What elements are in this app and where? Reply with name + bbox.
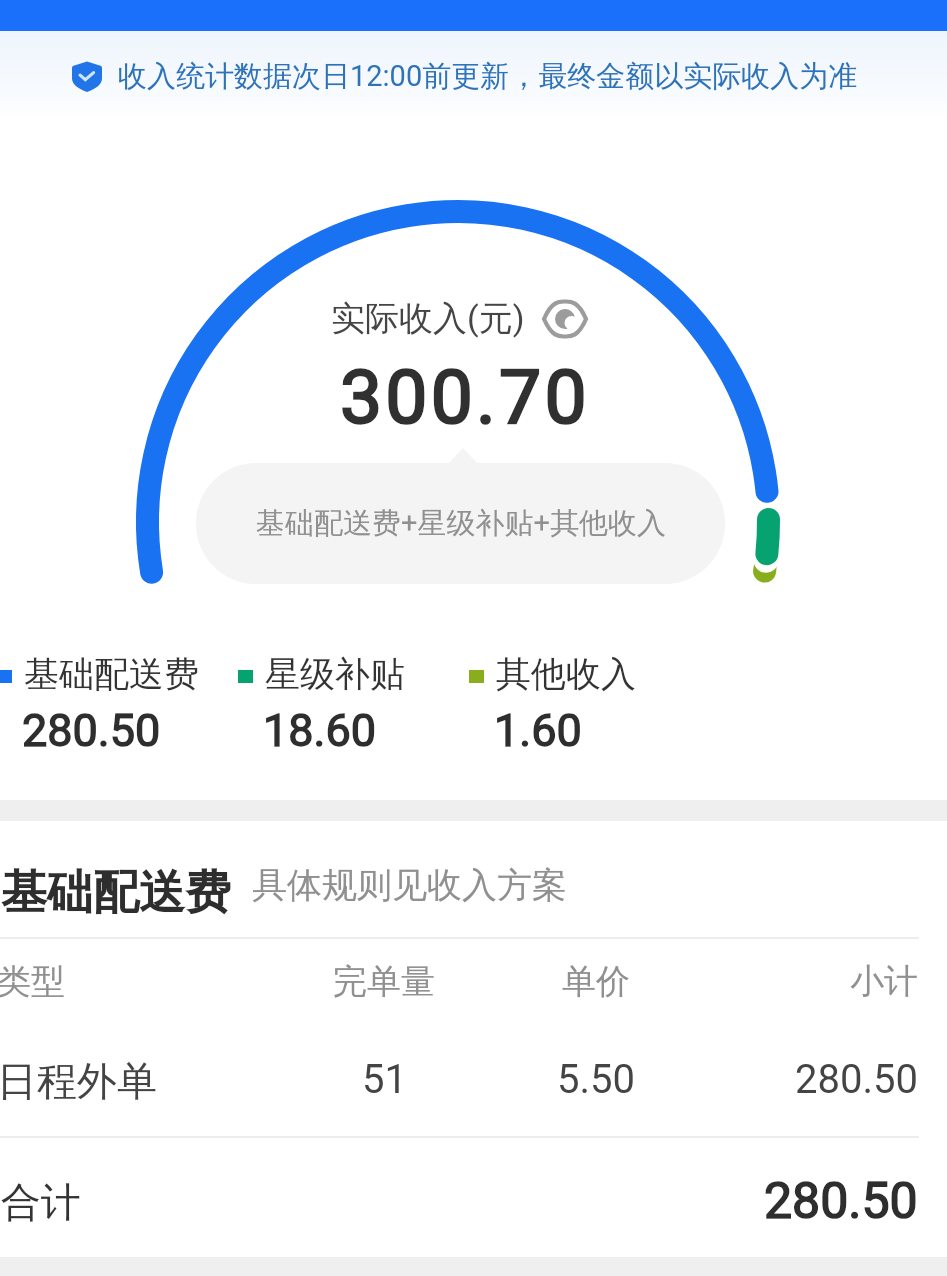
staticText: 收入统计数据次日12:00前更新，最终金额以实际收入为准 bbox=[118, 58, 858, 95]
staticText: 1.60 bbox=[494, 704, 582, 757]
staticText: 基础配送费+星级补贴+其他收入 bbox=[256, 505, 666, 542]
button[interactable]: Toggle amount visibility bbox=[543, 299, 587, 339]
staticText: 类型 bbox=[0, 960, 65, 1003]
button[interactable]: 收入统计数据次日12:00前更新，最终金额以实际收入为准 bbox=[0, 31, 947, 121]
button[interactable]: 基础配送费+星级补贴+其他收入 bbox=[196, 463, 725, 584]
staticText: 18.60 bbox=[263, 704, 377, 757]
staticText: 基础配送费 bbox=[24, 652, 199, 696]
staticText: 280.50 bbox=[764, 1172, 918, 1231]
button[interactable]: 星级补贴 bbox=[238, 646, 405, 699]
staticText: 其他收入 bbox=[496, 652, 636, 696]
button[interactable]: 其他收入 bbox=[469, 646, 636, 699]
staticText: 实际收入(元) bbox=[331, 297, 525, 340]
staticText: 300.70 bbox=[340, 353, 590, 441]
staticText: 51 bbox=[362, 1056, 407, 1103]
staticText: 小计 bbox=[850, 960, 918, 1003]
staticText: 具体规则见收入方案 bbox=[252, 863, 567, 907]
staticText: 280.50 bbox=[795, 1056, 918, 1103]
staticText: 完单量 bbox=[333, 960, 435, 1003]
staticText: 基础配送费 bbox=[1, 864, 231, 922]
staticText: 280.50 bbox=[22, 704, 161, 757]
staticText: 日程外单 bbox=[0, 1056, 157, 1106]
staticText: 单价 bbox=[562, 960, 630, 1003]
button[interactable]: 基础配送费 bbox=[0, 646, 199, 699]
staticText: 星级补贴 bbox=[265, 652, 405, 696]
staticText: 5.50 bbox=[557, 1056, 635, 1103]
staticText: 合计 bbox=[1, 1177, 81, 1227]
